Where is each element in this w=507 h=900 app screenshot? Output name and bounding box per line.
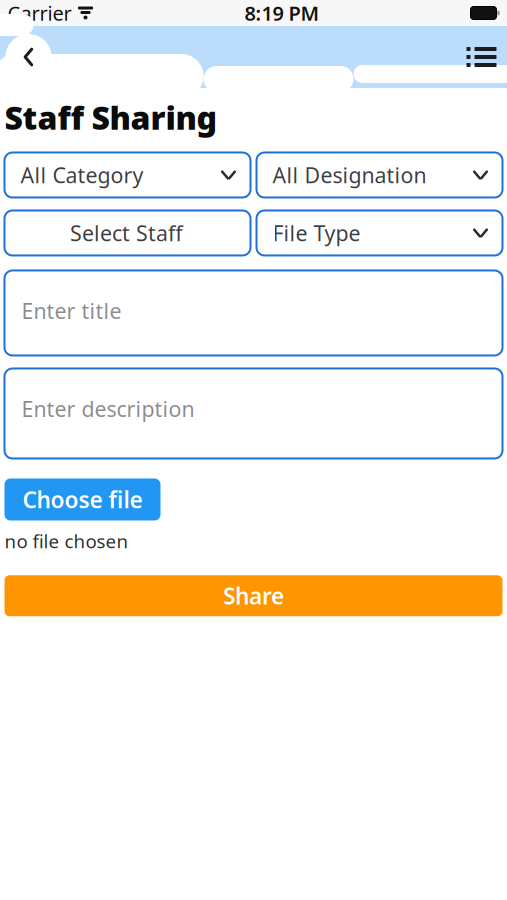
staticText: Select Staff [70,219,183,247]
button[interactable]: All Designation [256,152,502,197]
button[interactable]: Share [4,575,502,616]
staticText: Choose file [22,484,142,514]
staticText: Enter description [21,394,194,423]
staticText: no file chosen [4,528,128,553]
staticText: 8:19 PM [244,0,319,26]
staticText: Share [223,581,284,611]
button[interactable]: Enter description [4,368,502,458]
button[interactable]: Select Staff [4,210,250,255]
staticText: Staff Sharing [4,96,217,138]
staticText: Enter title [21,296,121,325]
button[interactable]: Enter title [4,270,502,355]
button[interactable]: Choose file [4,478,160,520]
staticText: All Designation [272,161,426,189]
staticText: Carrier [7,0,71,26]
staticText: All Category [20,161,143,189]
button[interactable]: All Category [4,152,250,197]
button[interactable]: Menu [461,40,501,74]
button[interactable]: File Type [256,210,502,255]
button[interactable]: Back [5,34,51,80]
staticText: File Type [272,219,360,247]
